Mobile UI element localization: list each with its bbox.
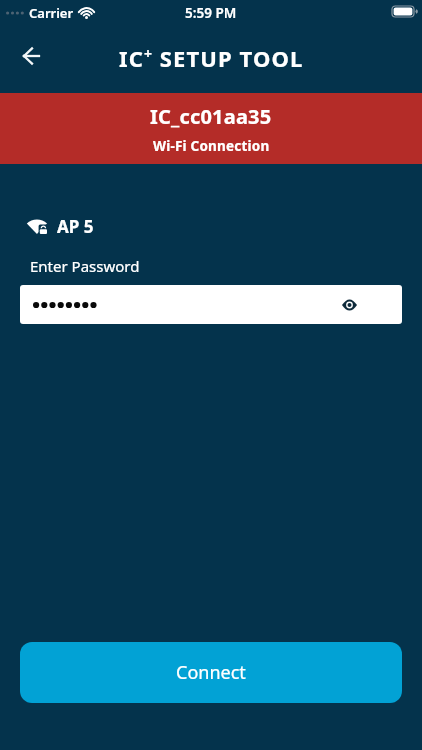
staticText: Connect bbox=[176, 660, 246, 685]
button[interactable]: AP 5 bbox=[29, 215, 94, 238]
staticText: IC_cc01aa35 bbox=[150, 103, 272, 130]
staticText: Carrier bbox=[29, 4, 74, 22]
staticText: AP 5 bbox=[57, 215, 94, 238]
button[interactable] bbox=[14, 39, 48, 73]
staticText: 5:59 PM bbox=[185, 4, 237, 22]
button[interactable] bbox=[20, 285, 402, 324]
button[interactable] bbox=[341, 297, 357, 313]
staticText: IC+ SETUP TOOL bbox=[119, 43, 304, 73]
staticText: Enter Password bbox=[30, 256, 140, 276]
button[interactable]: Connect bbox=[20, 642, 402, 703]
staticText: Wi-Fi Connection bbox=[153, 137, 270, 155]
